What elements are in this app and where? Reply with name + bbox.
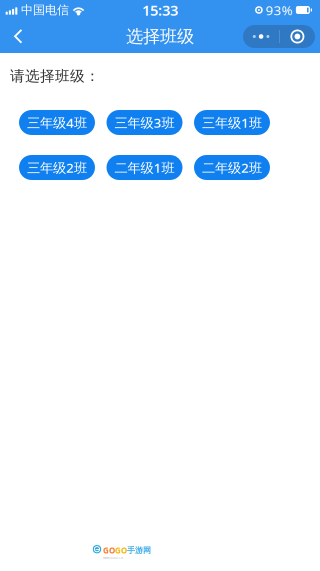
staticText: 15:33 — [142, 0, 178, 20]
button[interactable]: Back — [0, 20, 47, 53]
staticText: 三年级4班 — [27, 114, 87, 131]
button[interactable]: 三年级4班 — [19, 110, 95, 135]
staticText: GO — [115, 545, 127, 556]
staticText: WWW.GOGO.CN — [103, 556, 123, 560]
staticText: 手游网 — [127, 545, 151, 555]
staticText: 二年级1班 — [114, 159, 174, 176]
staticText: GO — [103, 545, 115, 556]
staticText: 二年级2班 — [202, 159, 262, 176]
staticText: 三年级1班 — [202, 114, 262, 131]
button[interactable]: 二年级2班 — [194, 155, 270, 180]
button[interactable]: 三年级2班 — [19, 155, 95, 180]
staticText: 三年级2班 — [27, 159, 87, 176]
button[interactable]: 二年级1班 — [106, 155, 182, 180]
staticText: 中国电信 — [21, 3, 69, 17]
button[interactable]: 三年级3班 — [106, 110, 182, 135]
button[interactable]: 三年级1班 — [194, 110, 270, 135]
staticText: 93% — [265, 1, 292, 19]
staticText: 请选择班级： — [10, 67, 100, 85]
staticText: 三年级3班 — [114, 114, 174, 131]
button[interactable]: Mini program menu — [243, 25, 320, 48]
staticText: 选择班级 — [126, 26, 194, 47]
